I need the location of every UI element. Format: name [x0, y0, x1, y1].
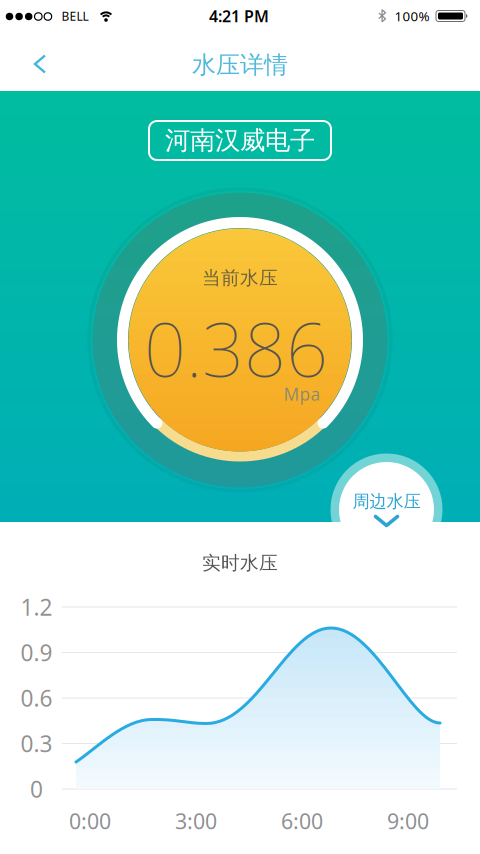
staticText: 0.9	[20, 637, 52, 667]
staticText: 3:00	[175, 807, 217, 835]
staticText: 周边水压	[352, 491, 420, 512]
staticText: Mpa	[283, 382, 320, 405]
button[interactable]: 周边水压	[330, 453, 442, 565]
staticText: 0:00	[69, 807, 111, 835]
staticText: 当前水压	[202, 266, 278, 289]
staticText: 实时水压	[202, 551, 278, 574]
staticText: 6:00	[281, 807, 323, 835]
staticText: 水压详情	[192, 50, 288, 80]
staticText: 1.2	[20, 592, 52, 622]
staticText: 0.386	[144, 299, 328, 397]
staticText: 0	[30, 774, 43, 804]
staticText: 9:00	[387, 807, 429, 835]
staticText: 4:21 PM	[209, 5, 269, 27]
staticText: 100%	[394, 7, 429, 25]
staticText: 0.6	[20, 683, 52, 713]
staticText: BELL	[61, 8, 88, 24]
button[interactable]	[11, 41, 59, 86]
staticText: 河南汉威电子	[165, 125, 315, 156]
button[interactable]: 河南汉威电子	[149, 121, 331, 160]
staticText: 0.3	[20, 728, 52, 758]
